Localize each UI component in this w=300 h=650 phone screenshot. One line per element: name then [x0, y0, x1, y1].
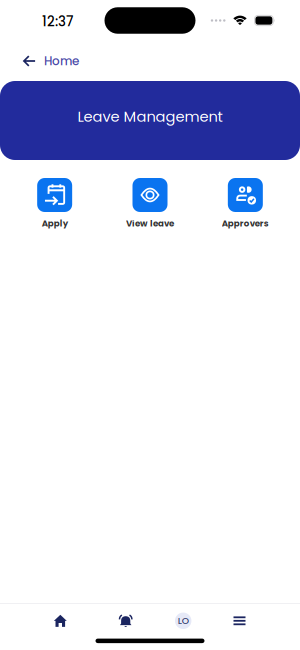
button[interactable]: Approvers	[198, 178, 293, 230]
staticText: Apply	[42, 217, 68, 230]
staticText: LO	[178, 614, 189, 627]
staticText: Approvers	[222, 217, 269, 230]
staticText: View leave	[126, 217, 174, 230]
button[interactable]: View leave	[102, 178, 198, 230]
staticText: 12:37	[42, 12, 73, 31]
button[interactable]: Home	[38, 611, 82, 631]
button[interactable]: Menu	[217, 611, 261, 631]
button[interactable]: Profile	[161, 611, 205, 631]
button[interactable]: Home	[0, 41, 300, 73]
staticText: Leave Management	[77, 106, 222, 127]
button[interactable]: Apply	[7, 178, 102, 230]
button[interactable]: Notifications	[104, 611, 148, 631]
staticText: Home	[44, 53, 79, 69]
